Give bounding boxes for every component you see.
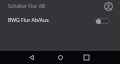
button[interactable]: Account <box>103 1 114 12</box>
button[interactable]: BWG Flur Ab/Aus <box>0 13 120 28</box>
button[interactable]: Home <box>53 51 68 64</box>
staticText: Schalter Flur AB <box>8 3 46 10</box>
staticText: BWG Flur Ab/Aus <box>8 17 49 24</box>
button[interactable]: Back <box>24 51 39 64</box>
button[interactable]: Recent apps <box>79 51 94 64</box>
button[interactable]: Toggle BWG Flur Ab/Aus <box>95 17 110 25</box>
